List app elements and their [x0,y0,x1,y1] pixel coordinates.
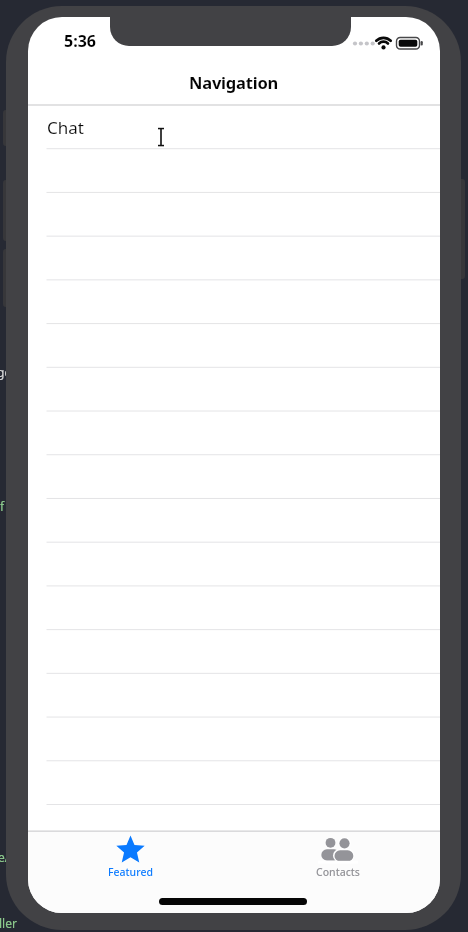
staticText: eA [0,849,13,865]
button[interactable]: Featured [70,832,191,895]
staticText: Navigation [189,71,279,93]
staticText: ller [0,915,17,931]
staticText: Contacts [316,865,360,879]
staticText: f [0,498,5,514]
staticText: Chat [47,116,84,139]
staticText: ge [0,364,12,380]
staticText: Featured [108,865,153,879]
button[interactable]: Contacts [277,832,398,895]
staticText: 5:36 [64,30,96,52]
button[interactable]: Chat [28,105,440,149]
